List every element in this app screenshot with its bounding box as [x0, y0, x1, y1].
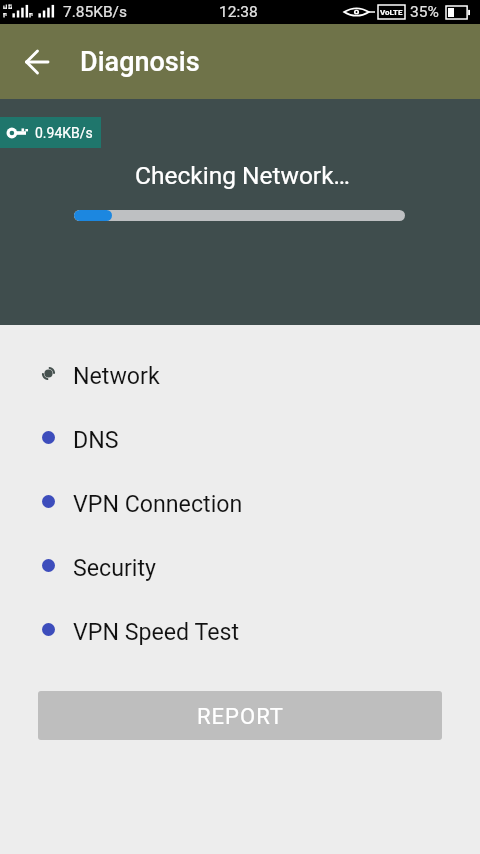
button[interactable]: DNS — [0, 405, 480, 469]
staticText: Diagnosis — [80, 46, 200, 78]
button[interactable]: Back — [13, 38, 61, 86]
staticText: VPN Speed Test — [73, 618, 240, 645]
button[interactable]: VPN Speed Test — [0, 597, 480, 661]
staticText: 12:38 — [219, 3, 258, 21]
staticText: VPN Connection — [73, 490, 243, 517]
button[interactable]: Security — [0, 533, 480, 597]
staticText: Security — [73, 554, 157, 581]
staticText: DNS — [73, 426, 119, 453]
staticText: VoLTE — [380, 8, 403, 17]
button[interactable]: REPORT — [38, 691, 442, 740]
staticText: REPORT — [197, 704, 284, 730]
staticText: 7.85KB/s — [63, 3, 127, 21]
other: Eye care mode — [343, 5, 375, 19]
staticText: 0.94KB/s — [35, 125, 93, 141]
button[interactable]: VPN Connection — [0, 469, 480, 533]
staticText: 35% — [410, 3, 439, 21]
staticText: Network — [73, 362, 160, 389]
staticText: Checking Network… — [135, 161, 350, 190]
button[interactable]: Network — [0, 341, 480, 405]
